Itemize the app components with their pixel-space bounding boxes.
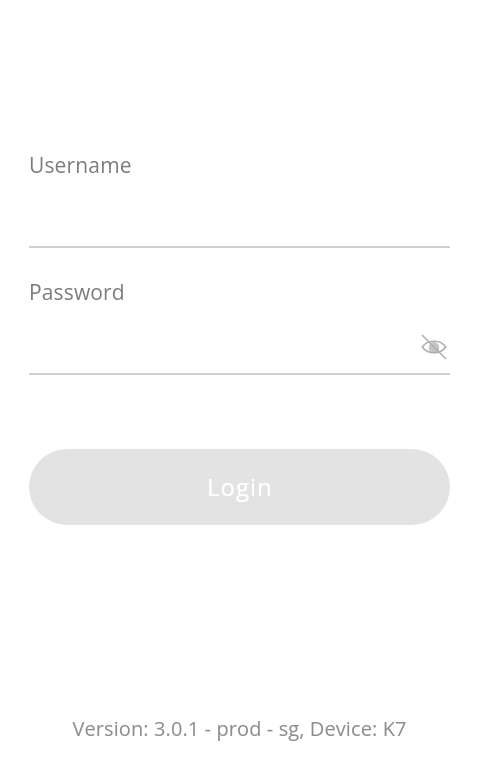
staticText: Password bbox=[29, 278, 125, 307]
staticText: Username bbox=[29, 151, 132, 180]
staticText: Version: 3.0.1 - prod - sg, Device: K7 bbox=[0, 715, 479, 742]
button[interactable]: Show password bbox=[410, 323, 458, 371]
button[interactable] bbox=[29, 145, 450, 248]
button[interactable]: Login bbox=[29, 449, 450, 525]
staticText: Login bbox=[207, 470, 273, 503]
button[interactable] bbox=[29, 272, 450, 375]
